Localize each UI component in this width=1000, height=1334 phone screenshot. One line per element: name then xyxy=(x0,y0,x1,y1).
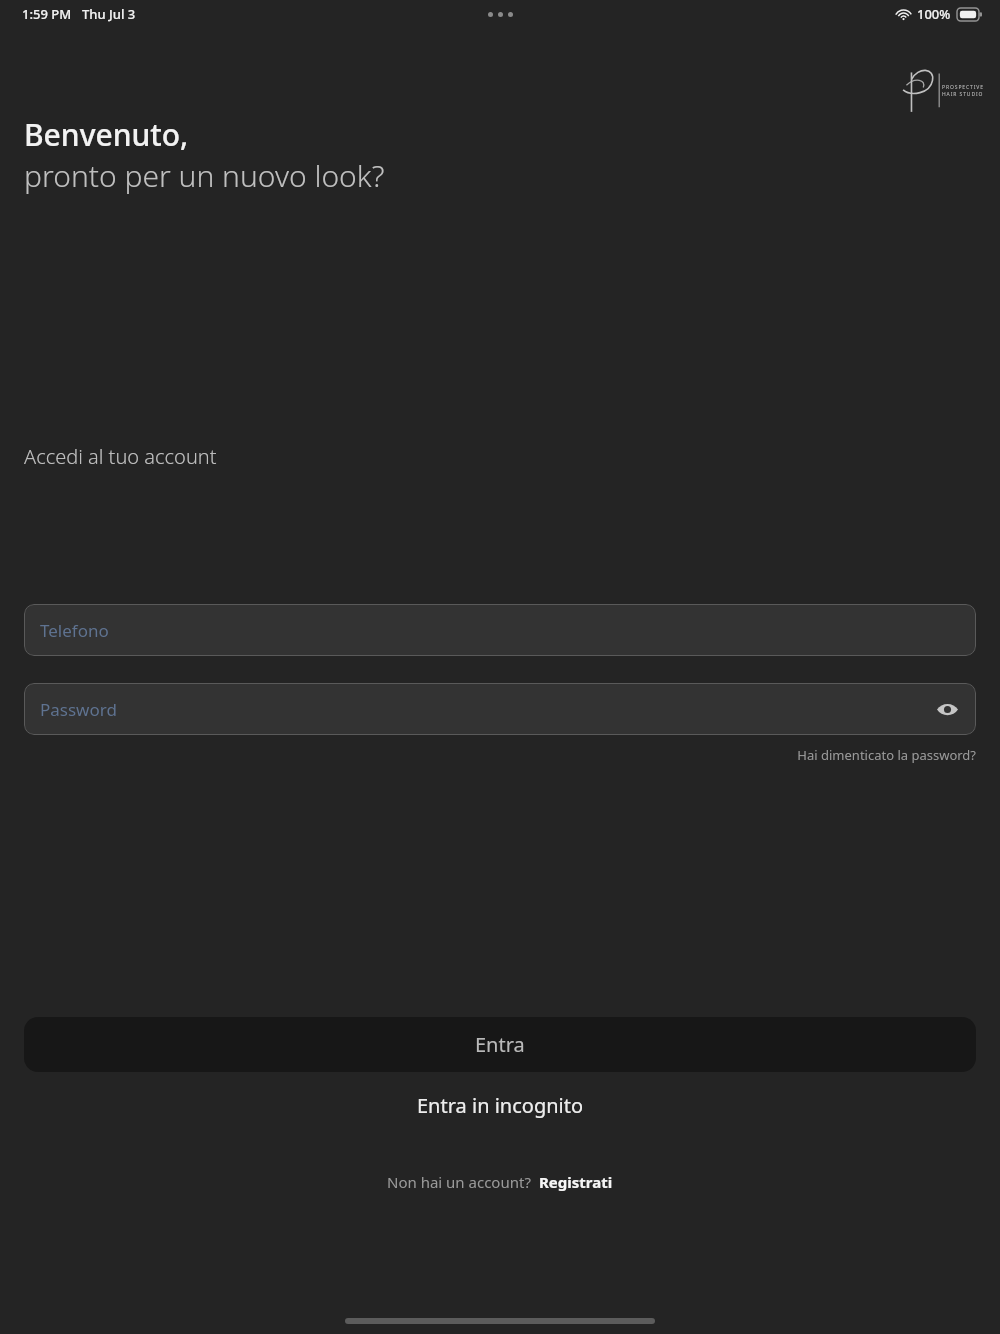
button[interactable]: Registrati xyxy=(539,1172,613,1192)
button[interactable]: Password xyxy=(24,683,976,735)
staticText: HAIR STUDIO xyxy=(942,91,984,98)
staticText: Hai dimenticato la password? xyxy=(797,746,976,764)
staticText: pronto per un nuovo look? xyxy=(24,155,385,196)
staticText: Thu Jul 3 xyxy=(82,5,136,23)
button[interactable]: Entra xyxy=(24,1017,976,1072)
button[interactable]: Mostra password xyxy=(932,694,962,724)
staticText: 1:59 PM xyxy=(22,5,72,23)
staticText: Entra in incognito xyxy=(417,1092,584,1119)
staticText: Entra xyxy=(475,1031,525,1058)
button[interactable]: Entra in incognito xyxy=(24,1086,976,1124)
button[interactable]: Telefono xyxy=(24,604,976,656)
button[interactable]: Hai dimenticato la password? xyxy=(740,742,976,768)
staticText: Telefono xyxy=(40,619,109,642)
staticText: PROSPECTIVE xyxy=(942,84,984,91)
staticText: Non hai un account? xyxy=(387,1172,531,1192)
staticText: 100% xyxy=(917,5,951,23)
staticText: Password xyxy=(40,698,117,721)
staticText: Registrati xyxy=(539,1172,613,1192)
staticText: Accedi al tuo account xyxy=(24,443,217,470)
staticText: Benvenuto, xyxy=(24,114,189,155)
